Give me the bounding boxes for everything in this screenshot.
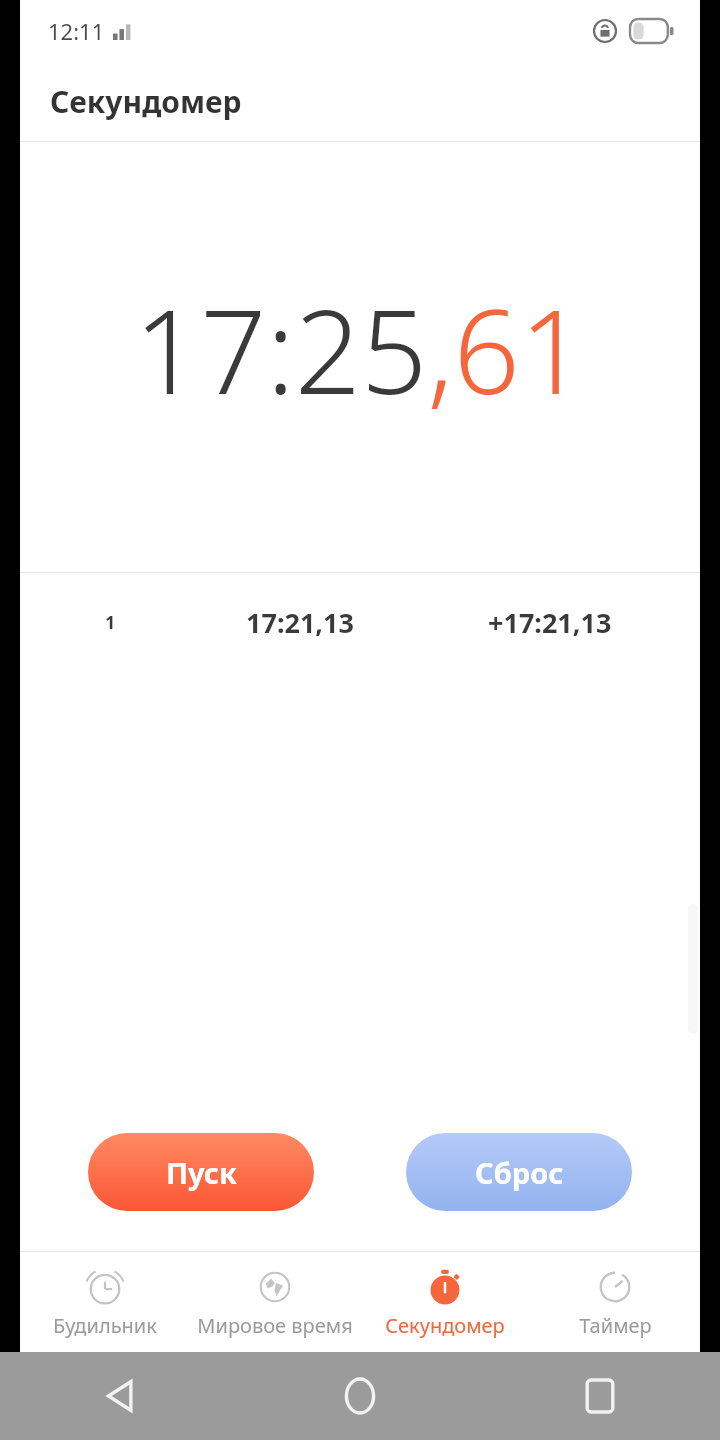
staticText: 12:11: [48, 16, 105, 46]
button[interactable]: Секундомер: [360, 1252, 530, 1352]
button[interactable]: Recent apps: [568, 1364, 632, 1428]
button[interactable]: Мировое время: [190, 1252, 360, 1352]
button[interactable]: Пуск: [88, 1133, 314, 1211]
staticText: Таймер: [579, 1312, 652, 1339]
button[interactable]: Home: [328, 1364, 392, 1428]
staticText: +17:21,13: [488, 604, 612, 641]
staticText: Будильник: [53, 1312, 157, 1339]
staticText: Секундомер: [50, 81, 242, 122]
staticText: Пуск: [166, 1153, 237, 1192]
button[interactable]: Будильник: [20, 1252, 190, 1352]
staticText: 17:25,61: [134, 270, 586, 428]
staticText: Сброс: [475, 1153, 564, 1192]
staticText: 1: [105, 610, 116, 635]
button[interactable]: Back: [88, 1364, 152, 1428]
button[interactable]: Таймер: [530, 1252, 700, 1352]
staticText: Секундомер: [385, 1312, 505, 1339]
button[interactable]: Сброс: [406, 1133, 632, 1211]
staticText: Мировое время: [197, 1312, 353, 1339]
staticText: 17:21,13: [246, 604, 354, 641]
button[interactable]: 1: [20, 599, 700, 645]
